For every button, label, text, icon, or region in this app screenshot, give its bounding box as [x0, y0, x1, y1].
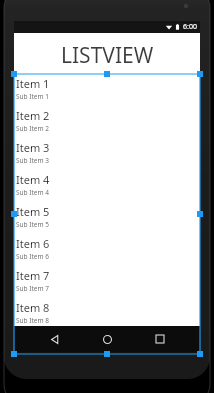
staticText: Item 5: [16, 204, 50, 219]
staticText: Sub Item 7: [16, 284, 49, 293]
button[interactable]: Home: [94, 326, 120, 352]
staticText: Item 2: [16, 108, 50, 123]
button[interactable]: Item 5: [14, 202, 200, 234]
staticText: 6:00: [183, 22, 197, 32]
staticText: Sub Item 5: [16, 220, 49, 229]
button[interactable]: Item 3: [14, 138, 200, 170]
staticText: Sub Item 4: [16, 188, 49, 197]
button[interactable]: Item 1: [14, 74, 200, 106]
button[interactable]: Back: [41, 326, 67, 352]
staticText: Item 8: [16, 300, 50, 315]
button[interactable]: Item 6: [14, 234, 200, 266]
staticText: Item 4: [16, 172, 50, 187]
staticText: Item 1: [16, 76, 50, 91]
button[interactable]: Item 4: [14, 170, 200, 202]
staticText: LISTVIEW: [61, 41, 154, 70]
button[interactable]: LISTVIEW: [14, 33, 200, 74]
button[interactable]: Item 8: [14, 298, 200, 326]
button[interactable]: Recent apps: [147, 326, 173, 352]
staticText: Sub Item 8: [16, 316, 49, 325]
staticText: Sub Item 1: [16, 92, 49, 101]
staticText: Item 6: [16, 236, 50, 251]
button[interactable]: Item 7: [14, 266, 200, 298]
button[interactable]: Item 2: [14, 106, 200, 138]
staticText: Sub Item 2: [16, 124, 49, 133]
staticText: Sub Item 3: [16, 156, 49, 165]
staticText: Sub Item 6: [16, 252, 49, 261]
staticText: Item 7: [16, 268, 50, 283]
staticText: Item 3: [16, 140, 50, 155]
